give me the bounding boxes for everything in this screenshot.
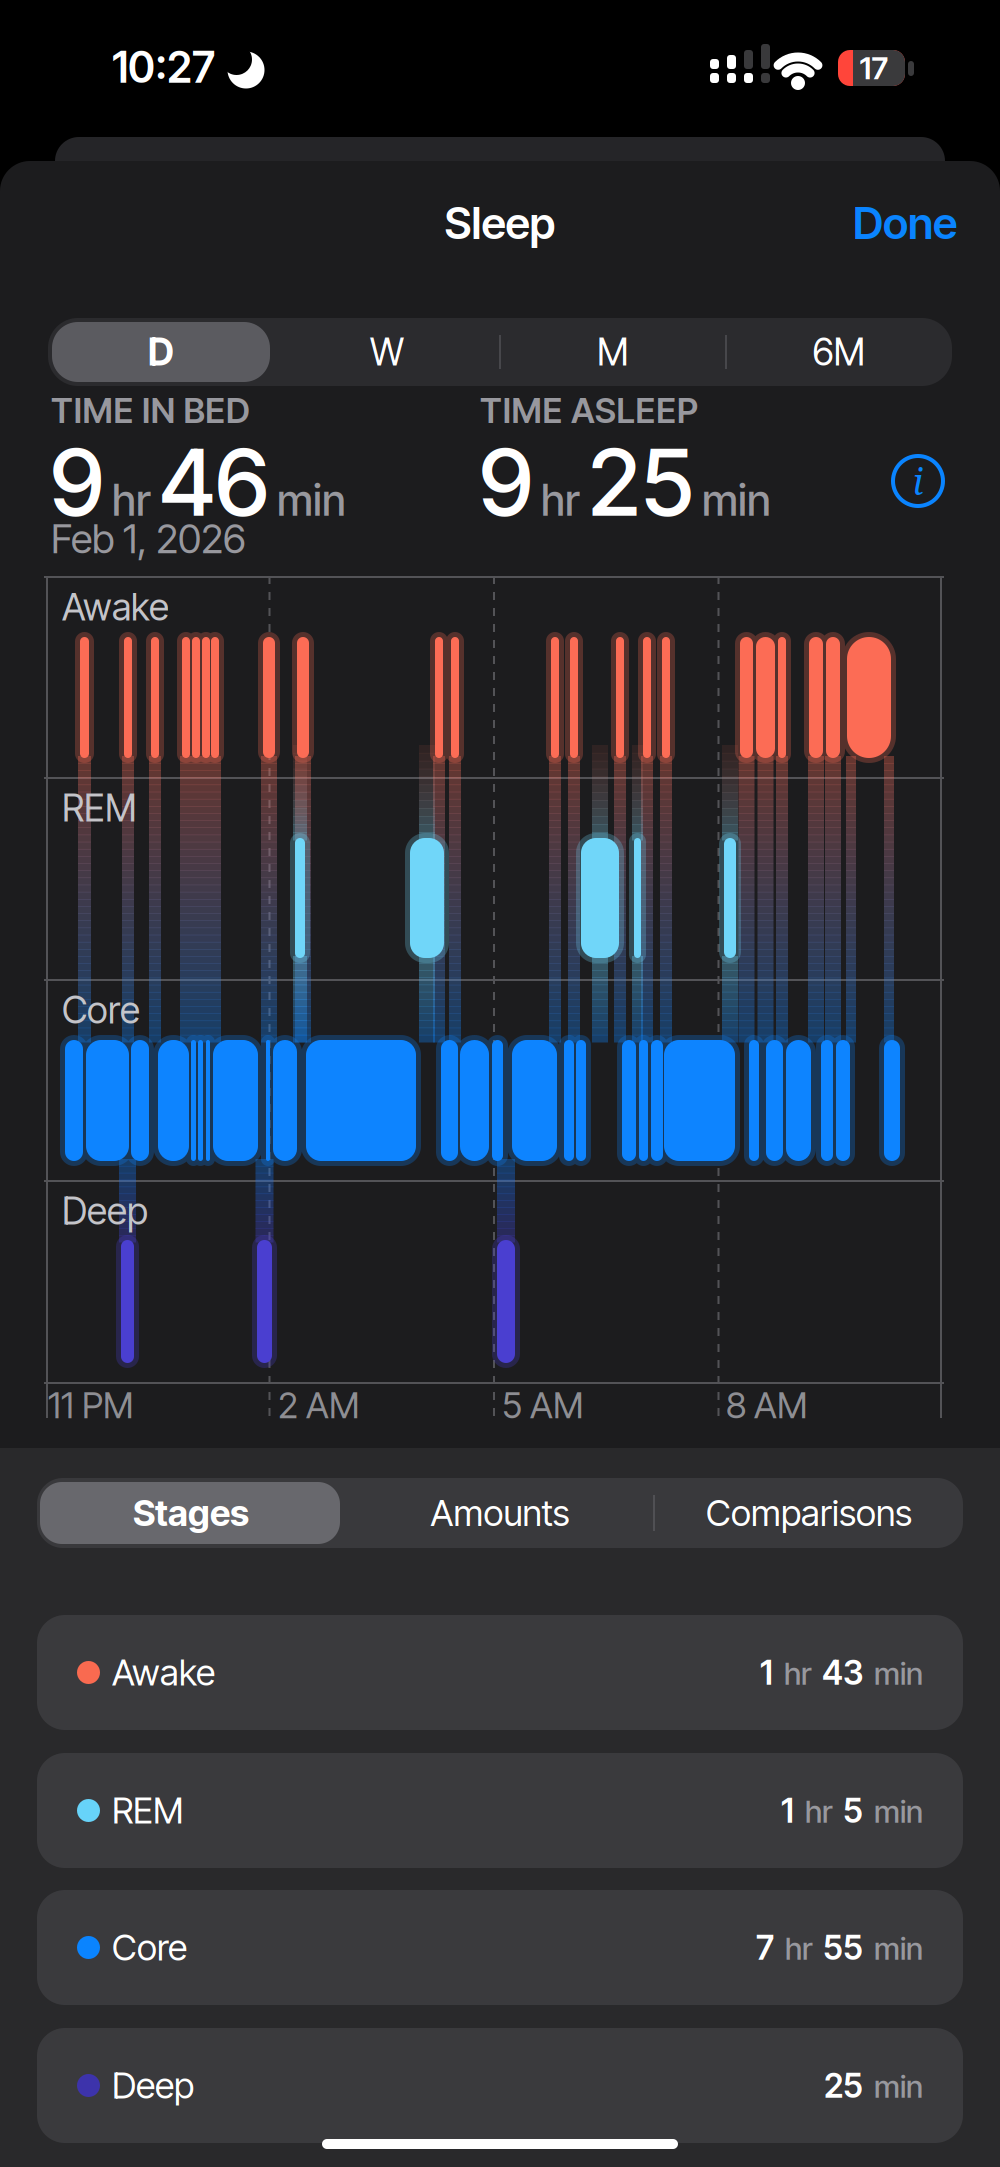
- button[interactable]: W: [274, 318, 500, 386]
- staticText: Awake: [62, 585, 169, 629]
- staticText: hr: [112, 475, 151, 525]
- staticText: 25: [824, 2066, 863, 2105]
- staticText: 17: [859, 50, 888, 86]
- button[interactable]: Stages: [37, 1478, 345, 1548]
- staticText: M: [597, 330, 629, 374]
- staticText: 11 PM: [48, 1384, 133, 1426]
- button[interactable]: Done: [853, 197, 957, 249]
- staticText: 6M: [812, 330, 865, 374]
- staticText: W: [370, 330, 404, 374]
- staticText: 2 AM: [278, 1384, 359, 1426]
- staticText: REM: [112, 1789, 183, 1832]
- staticText: D: [148, 330, 174, 374]
- staticText: 9: [50, 428, 104, 536]
- staticText: 8 AM: [726, 1384, 807, 1426]
- staticText: Core: [62, 988, 140, 1032]
- staticText: Sleep: [444, 197, 555, 249]
- staticText: min: [277, 475, 346, 525]
- staticText: i: [912, 456, 923, 505]
- button[interactable]: i: [890, 453, 946, 509]
- button[interactable]: Deep: [37, 2028, 963, 2143]
- staticText: min: [874, 1930, 923, 1967]
- staticText: Core: [112, 1926, 187, 1969]
- staticText: min: [874, 1793, 923, 1830]
- staticText: min: [874, 2068, 923, 2105]
- staticText: 43: [822, 1653, 863, 1692]
- staticText: hr: [785, 1930, 812, 1967]
- staticText: Done: [853, 197, 957, 249]
- staticText: TIME IN BED: [51, 390, 250, 431]
- staticText: min: [702, 475, 771, 525]
- button[interactable]: REM: [37, 1753, 963, 1868]
- staticText: 5: [843, 1791, 863, 1830]
- staticText: REM: [62, 786, 137, 830]
- button[interactable]: Core: [37, 1890, 963, 2005]
- button[interactable]: Awake: [37, 1615, 963, 1730]
- staticText: min: [874, 1655, 923, 1692]
- staticText: 10:27: [112, 42, 215, 92]
- staticText: hr: [805, 1793, 832, 1830]
- staticText: Amounts: [430, 1492, 569, 1534]
- staticText: 55: [823, 1928, 863, 1967]
- staticText: Feb 1, 2026: [51, 515, 246, 562]
- staticText: Awake: [112, 1651, 215, 1694]
- staticText: Comparisons: [706, 1492, 912, 1534]
- button[interactable]: M: [500, 318, 726, 386]
- staticText: Deep: [112, 2064, 194, 2107]
- staticText: Deep: [62, 1189, 148, 1233]
- staticText: 9: [479, 428, 533, 536]
- staticText: 7: [756, 1928, 774, 1967]
- staticText: hr: [541, 475, 580, 525]
- staticText: 25: [588, 428, 694, 536]
- button[interactable]: Amounts: [346, 1478, 654, 1548]
- staticText: 1: [781, 1791, 794, 1830]
- staticText: TIME ASLEEP: [480, 390, 698, 431]
- staticText: 5 AM: [502, 1384, 583, 1426]
- button[interactable]: Comparisons: [655, 1478, 963, 1548]
- staticText: 46: [159, 428, 269, 536]
- staticText: 1: [760, 1653, 773, 1692]
- button[interactable]: 6M: [726, 318, 952, 386]
- staticText: Stages: [133, 1492, 249, 1534]
- staticText: hr: [784, 1655, 811, 1692]
- button[interactable]: D: [48, 318, 274, 386]
